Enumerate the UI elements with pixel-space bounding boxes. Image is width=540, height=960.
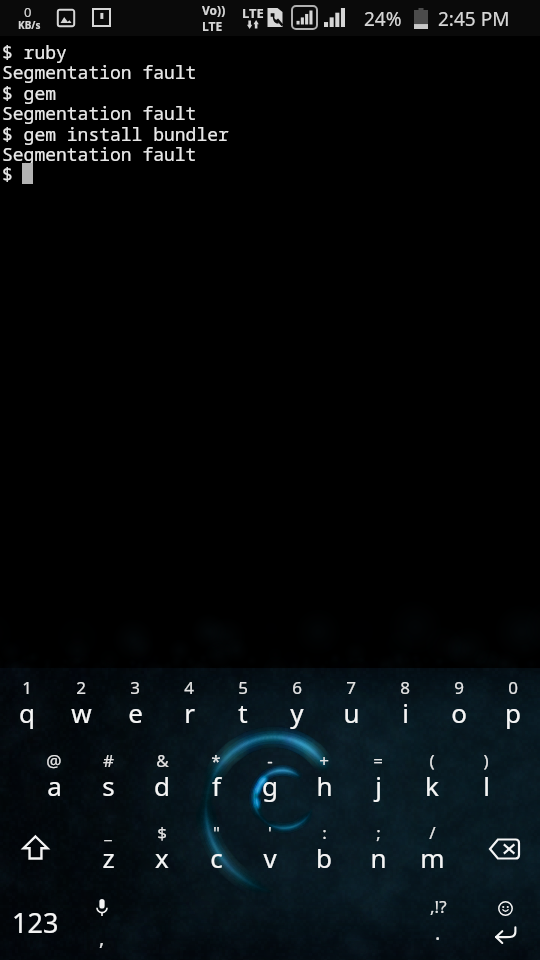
- staticText: t: [238, 695, 248, 730]
- staticText: .: [435, 919, 441, 946]
- staticText: w: [71, 695, 92, 730]
- button[interactable]: 7: [324, 675, 378, 743]
- staticText: @: [46, 749, 62, 772]
- staticText: 2: [76, 676, 86, 699]
- staticText: Segmentation fault: [2, 60, 197, 85]
- button[interactable]: *: [189, 748, 243, 816]
- button[interactable]: ;: [351, 820, 405, 888]
- staticText: +: [319, 749, 329, 772]
- staticText: z: [102, 840, 115, 875]
- staticText: b: [316, 840, 332, 875]
- button[interactable]: 3: [108, 675, 162, 743]
- button[interactable]: ): [459, 748, 513, 816]
- staticText: LTE: [202, 18, 223, 34]
- staticText: &: [156, 749, 169, 772]
- button[interactable]: ": [189, 820, 243, 888]
- button[interactable]: ,!?: [408, 888, 466, 960]
- button[interactable]: 123: [0, 888, 72, 960]
- button[interactable]: _: [81, 820, 135, 888]
- staticText: *: [211, 749, 221, 772]
- staticText: k: [425, 768, 439, 803]
- button[interactable]: 8: [378, 675, 432, 743]
- staticText: LTE: [242, 4, 264, 22]
- staticText: 4: [184, 676, 194, 699]
- staticText: 0: [508, 676, 518, 699]
- button[interactable]: +: [297, 748, 351, 816]
- staticText: j: [375, 768, 382, 803]
- staticText: 2:45 PM: [438, 6, 510, 32]
- staticText: x: [155, 840, 169, 875]
- staticText: 0: [24, 3, 32, 21]
- staticText: g: [262, 768, 278, 803]
- staticText: v: [263, 840, 277, 875]
- staticText: i: [402, 695, 409, 730]
- staticText: 6: [292, 676, 302, 699]
- button[interactable]: 4: [162, 675, 216, 743]
- staticText: o: [451, 695, 467, 730]
- button[interactable]: ': [243, 820, 297, 888]
- staticText: $ ruby: [2, 40, 67, 65]
- staticText: ): [483, 749, 489, 772]
- staticText: 9: [454, 676, 464, 699]
- staticText: h: [316, 768, 333, 803]
- staticText: ': [268, 821, 272, 844]
- staticText: $ gem install bundler: [2, 122, 229, 147]
- staticText: c: [210, 840, 223, 875]
- staticText: ": [213, 821, 220, 844]
- staticText: 123: [12, 904, 59, 941]
- staticText: =: [373, 749, 383, 772]
- button[interactable]: :: [297, 820, 351, 888]
- staticText: s: [102, 768, 115, 803]
- staticText: #: [103, 749, 114, 772]
- staticText: 3: [130, 676, 140, 699]
- button[interactable]: Shift: [0, 820, 81, 888]
- staticText: n: [370, 840, 387, 875]
- button[interactable]: /: [405, 820, 459, 888]
- button[interactable]: (: [405, 748, 459, 816]
- button[interactable]: &: [135, 748, 189, 816]
- button[interactable]: =: [351, 748, 405, 816]
- staticText: Vo)): [202, 2, 226, 18]
- staticText: -: [267, 749, 273, 772]
- staticText: l: [483, 768, 490, 803]
- staticText: 8: [400, 676, 410, 699]
- staticText: d: [154, 768, 170, 803]
- staticText: 1: [22, 676, 32, 699]
- staticText: 24%: [364, 6, 402, 32]
- staticText: $: [2, 162, 13, 187]
- staticText: y: [290, 695, 304, 730]
- button[interactable]: $: [135, 820, 189, 888]
- button[interactable]: @: [27, 748, 81, 816]
- staticText: r: [184, 695, 195, 730]
- staticText: ;: [376, 821, 381, 844]
- staticText: m: [420, 840, 445, 875]
- staticText: Segmentation fault: [2, 101, 197, 126]
- staticText: 5: [238, 676, 248, 699]
- staticText: (: [429, 749, 435, 772]
- button[interactable]: Space: [130, 888, 408, 960]
- button[interactable]: 2: [54, 675, 108, 743]
- button[interactable]: Voice input: [72, 888, 130, 960]
- staticText: ,: [99, 924, 105, 951]
- staticText: e: [128, 695, 143, 730]
- staticText: a: [47, 768, 62, 803]
- button[interactable]: 0: [486, 675, 540, 743]
- button[interactable]: -: [243, 748, 297, 816]
- staticText: q: [19, 695, 35, 730]
- button[interactable]: 6: [270, 675, 324, 743]
- staticText: f: [212, 768, 221, 803]
- staticText: KB/s: [18, 18, 41, 32]
- button[interactable]: #: [81, 748, 135, 816]
- button[interactable]: 9: [432, 675, 486, 743]
- staticText: $ gem: [2, 81, 56, 106]
- staticText: 7: [346, 676, 356, 699]
- staticText: $: [157, 821, 167, 844]
- staticText: Segmentation fault: [2, 142, 197, 167]
- button[interactable]: Backspace: [459, 820, 540, 888]
- button[interactable]: Enter: [466, 888, 540, 960]
- staticText: p: [505, 695, 521, 730]
- staticText: u: [343, 695, 360, 730]
- button[interactable]: 1: [0, 675, 54, 743]
- staticText: :: [322, 821, 327, 844]
- button[interactable]: 5: [216, 675, 270, 743]
